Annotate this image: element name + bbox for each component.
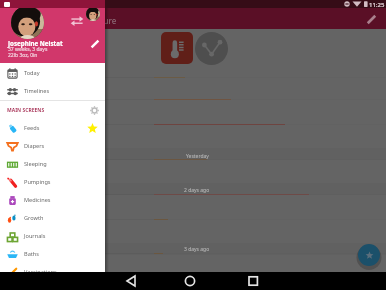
staticText: Josephine Neistat [8, 39, 63, 47]
staticText: 11:25 [369, 1, 385, 9]
button[interactable]: Vaccinations [0, 263, 105, 281]
button[interactable]: Medicines [0, 191, 105, 209]
button[interactable]: Pumpings [0, 173, 105, 191]
button[interactable]: Edit baby [88, 37, 102, 51]
staticText: MAIN SCREENS [7, 107, 45, 114]
staticText: Sleeping [24, 160, 47, 168]
staticText: 37 weeks, 3 days [8, 46, 48, 53]
staticText: Growth [24, 214, 44, 222]
staticText: Diapers [24, 142, 45, 150]
staticText: Vaccinations [24, 268, 57, 276]
button[interactable]: Diapers [0, 137, 105, 155]
button[interactable]: Baths [0, 245, 105, 263]
button[interactable]: Timelines [0, 82, 105, 100]
button[interactable]: Today [0, 64, 105, 82]
button[interactable]: Journals [0, 227, 105, 245]
staticText: Journals [24, 232, 46, 240]
button[interactable]: Temperature [161, 32, 193, 64]
staticText: Temperature [67, 15, 117, 26]
staticText: Today [24, 69, 40, 77]
staticText: Yesterday [186, 153, 209, 160]
staticText: Feeds [24, 124, 40, 132]
button[interactable]: Edit [363, 11, 379, 27]
button[interactable]: Feeds [0, 119, 105, 137]
button[interactable]: Add entry [358, 244, 380, 266]
staticText: 3 days ago [184, 246, 210, 253]
button[interactable]: Charts [195, 32, 228, 65]
staticText: 22lb 3oz, 0in [8, 52, 38, 59]
staticText: Medicines [24, 196, 51, 204]
button[interactable]: Switch baby [86, 7, 100, 21]
button[interactable]: Growth [0, 209, 105, 227]
staticText: 2 days ago [184, 187, 210, 194]
button[interactable]: MAIN SCREENS [0, 101, 105, 119]
staticText: Timelines [24, 87, 50, 95]
staticText: Pumpings [24, 178, 51, 186]
button[interactable]: Sleeping [0, 155, 105, 173]
staticText: Baths [24, 250, 39, 258]
